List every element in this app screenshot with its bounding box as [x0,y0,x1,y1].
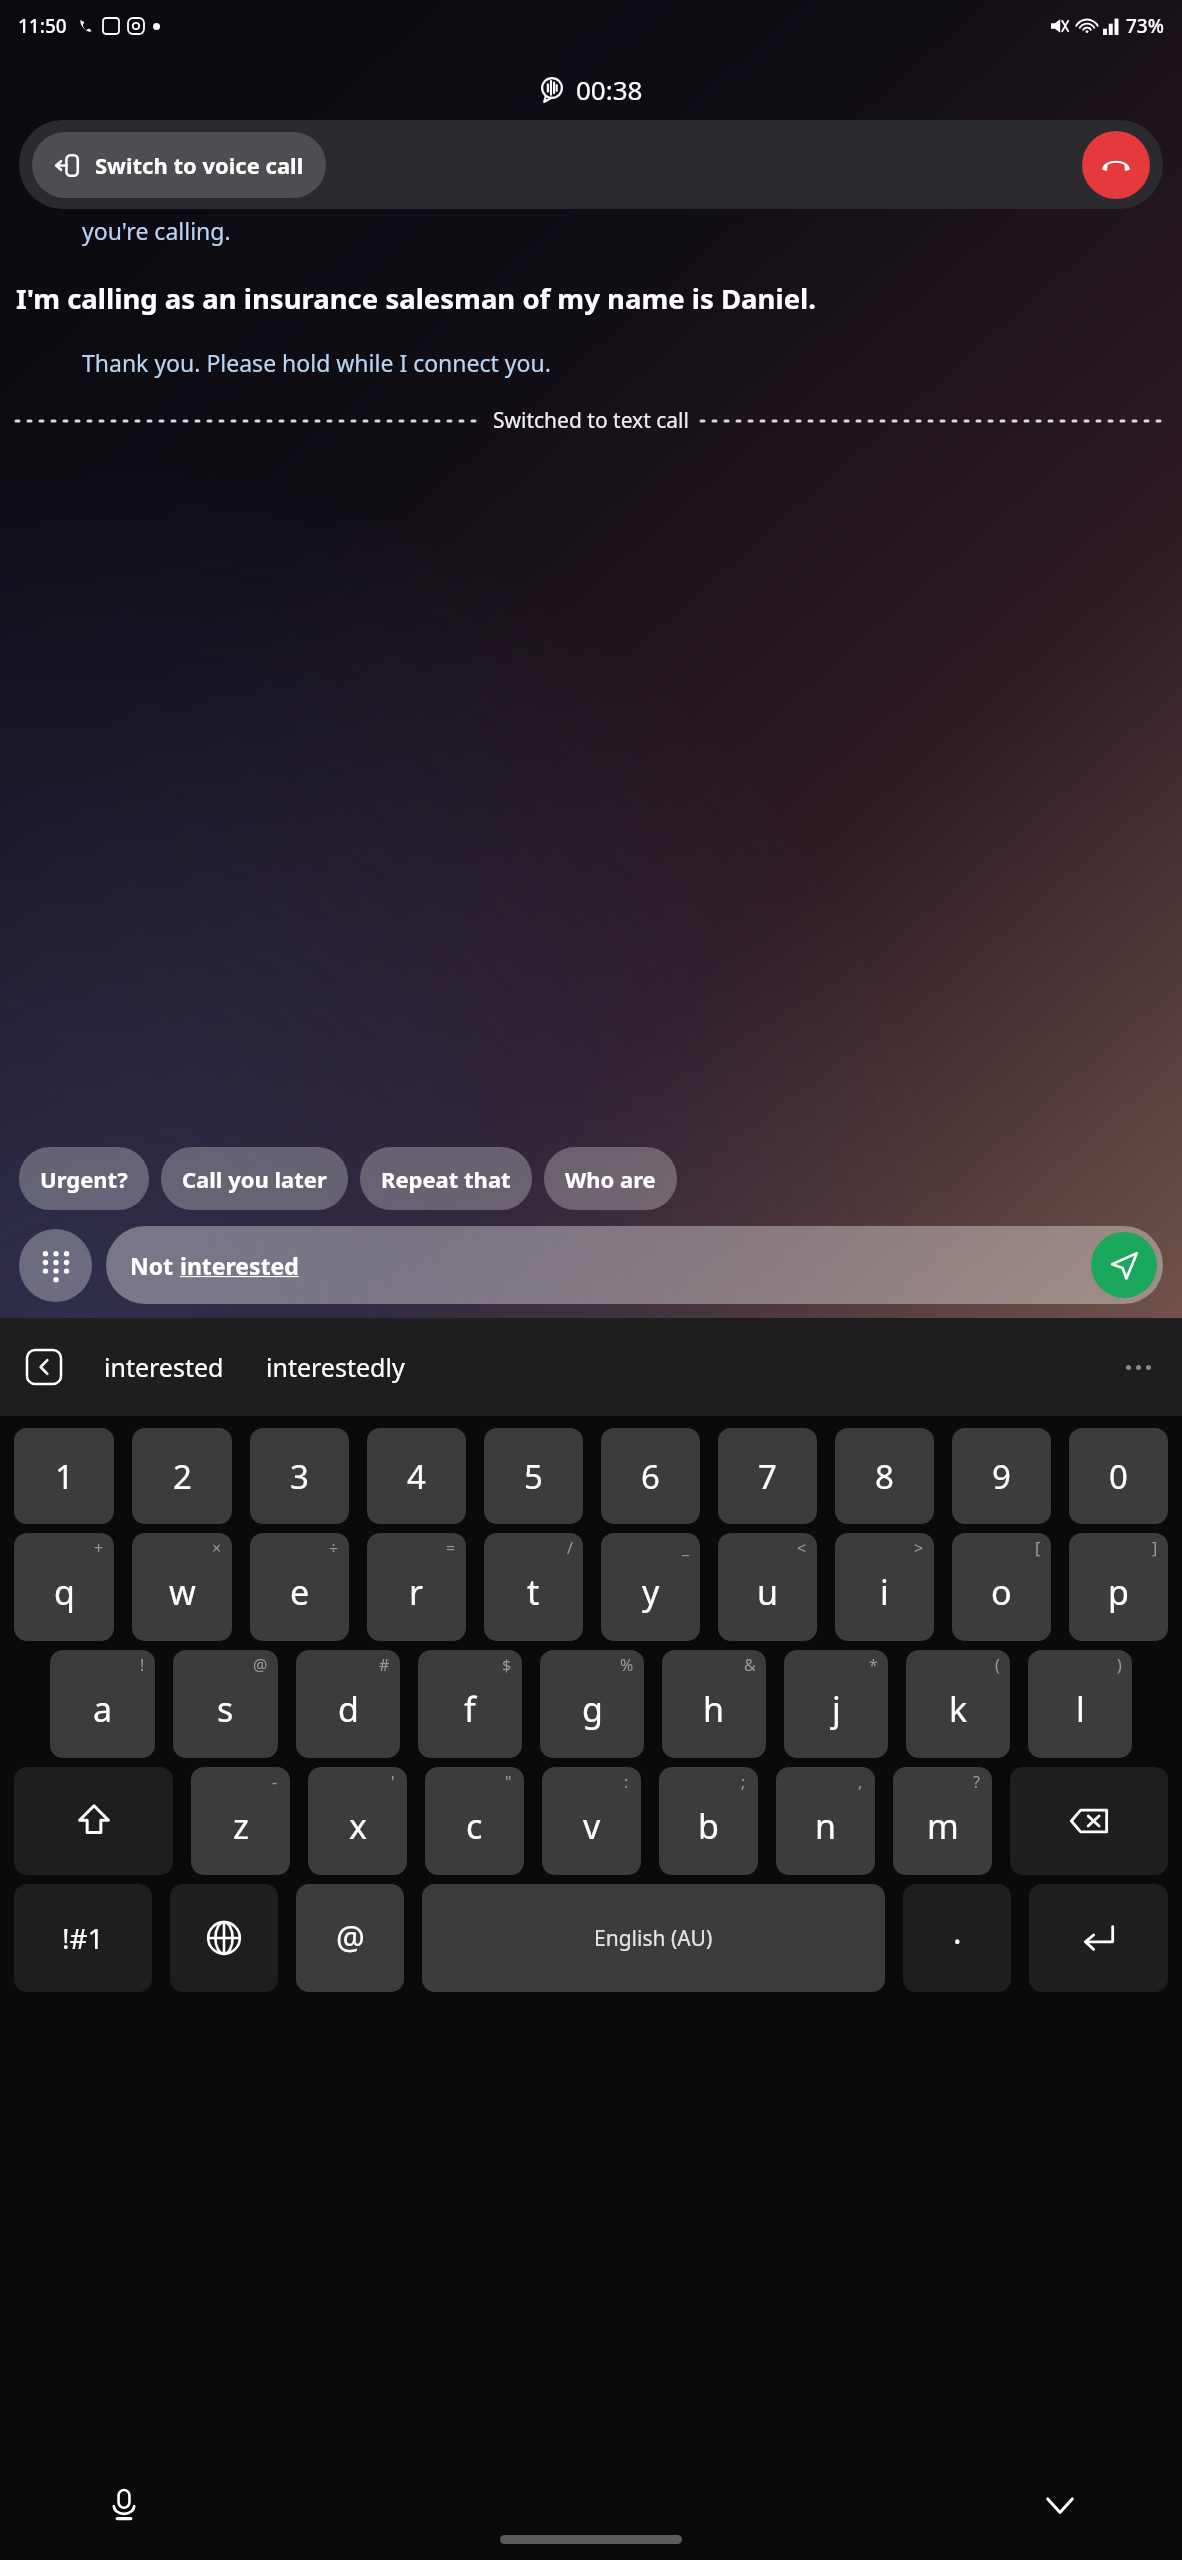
button[interactable]: Switch to voice call [32,132,326,198]
staticText: [ [1035,1537,1041,1559]
staticText: f [464,1686,476,1732]
staticText: 6 [641,1454,660,1499]
staticText: ! [140,1654,145,1676]
staticText: Switch to voice call [95,150,304,180]
staticText: × [212,1537,222,1559]
button[interactable]: Dialpad [19,1229,92,1302]
button[interactable]: End call [1082,131,1150,199]
button[interactable]: & [662,1650,766,1758]
staticText: y [642,1569,660,1615]
button[interactable]: < [718,1533,817,1641]
button[interactable]: English (AU) [422,1884,885,1992]
staticText: + [94,1537,104,1559]
button[interactable]: Not [106,1226,1163,1304]
button[interactable]: 6 [601,1428,700,1524]
staticText: Who are [565,1164,656,1194]
button[interactable]: Hide keyboard [1032,2477,1088,2533]
button[interactable]: 2 [132,1428,232,1524]
staticText: l [1076,1686,1085,1732]
button[interactable]: ; [659,1767,758,1875]
button[interactable]: 7 [718,1428,817,1524]
button[interactable]: - [191,1767,290,1875]
staticText: k [949,1686,968,1732]
button[interactable]: Voice input [96,2477,152,2533]
button[interactable]: Enter [1029,1884,1168,1992]
button[interactable]: 1 [14,1428,114,1524]
button[interactable]: Backspace [1010,1767,1168,1875]
staticText: s [217,1686,234,1732]
button[interactable]: : [542,1767,641,1875]
button[interactable]: # [296,1650,400,1758]
button[interactable]: ! [50,1650,155,1758]
button[interactable]: ? [893,1767,992,1875]
staticText: q [54,1569,75,1615]
button[interactable]: / [484,1533,583,1641]
button[interactable]: Urgent? [19,1147,149,1210]
staticText: 9 [992,1454,1011,1499]
button[interactable]: 0 [1069,1428,1168,1524]
staticText: m [927,1803,959,1849]
button[interactable]: ] [1069,1533,1168,1641]
staticText: 5 [524,1454,543,1499]
staticText: p [1108,1569,1129,1615]
staticText: ; [741,1771,746,1793]
button[interactable]: ÷ [250,1533,349,1641]
button[interactable]: Who are [544,1147,677,1210]
button[interactable]: . [903,1884,1011,1992]
staticText: > [914,1537,924,1559]
button[interactable]: 3 [250,1428,349,1524]
button[interactable]: = [367,1533,466,1641]
staticText: interested [104,1350,224,1384]
staticText: 00:38 [576,72,643,107]
staticText: < [797,1537,807,1559]
button[interactable]: Shift [14,1767,173,1875]
button[interactable]: 5 [484,1428,583,1524]
button[interactable]: + [14,1533,114,1641]
button[interactable]: Change language [170,1884,278,1992]
button[interactable]: !#1 [14,1884,152,1992]
button[interactable]: * [784,1650,888,1758]
staticText: 3 [290,1454,309,1499]
staticText: & [744,1654,756,1676]
button[interactable]: _ [601,1533,700,1641]
button[interactable]: interestedly [260,1344,411,1390]
staticText: * [869,1654,878,1676]
button[interactable]: @ [173,1650,278,1758]
staticText: @ [336,1916,365,1960]
staticText: ( [995,1654,1000,1676]
staticText: 4 [407,1454,426,1499]
staticText: : [624,1771,629,1793]
button[interactable]: [ [952,1533,1051,1641]
staticText: 8 [875,1454,894,1499]
button[interactable]: 4 [367,1428,466,1524]
staticText: u [757,1569,779,1615]
button[interactable]: , [776,1767,875,1875]
staticText: z [233,1803,249,1849]
button[interactable]: interested [98,1344,230,1390]
staticText: Call you later [182,1164,327,1194]
button[interactable]: More options [1116,1345,1160,1389]
button[interactable]: × [132,1533,232,1641]
staticText: . [953,1910,962,1954]
staticText: a [93,1686,113,1732]
staticText: ? [973,1771,980,1793]
button[interactable]: Repeat that [360,1147,532,1210]
button[interactable]: > [835,1533,934,1641]
staticText: 73% [1126,13,1164,39]
button[interactable]: Send [1091,1232,1157,1298]
button[interactable]: Call you later [161,1147,348,1210]
staticText: g [582,1686,603,1732]
button[interactable]: 8 [835,1428,934,1524]
staticText: " [505,1771,512,1793]
button[interactable]: " [425,1767,524,1875]
button[interactable]: 9 [952,1428,1051,1524]
button[interactable]: % [540,1650,644,1758]
staticText: you're calling. [82,215,231,246]
button[interactable]: ' [308,1767,407,1875]
button[interactable]: ( [906,1650,1010,1758]
button[interactable]: $ [418,1650,522,1758]
button[interactable]: ) [1028,1650,1132,1758]
button[interactable]: Previous suggestions [22,1345,66,1389]
button[interactable]: @ [296,1884,404,1992]
staticText: - [272,1771,278,1793]
